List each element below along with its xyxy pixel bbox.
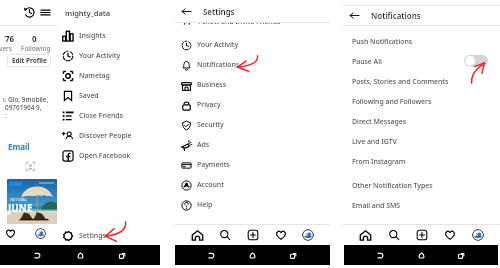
button[interactable]: Search — [388, 229, 400, 241]
button[interactable]: Security — [175, 115, 330, 135]
staticText: Discover People — [79, 131, 132, 141]
button[interactable]: Create — [247, 229, 259, 241]
button[interactable]: Activity — [275, 229, 287, 241]
staticText: 09761964 9, — [5, 103, 42, 112]
staticText: Account — [197, 180, 224, 190]
button[interactable]: Discover People — [57, 126, 160, 146]
staticText: Notifications — [197, 60, 240, 70]
button[interactable]: Create — [416, 229, 428, 241]
button[interactable]: Your Activity — [175, 35, 330, 55]
button[interactable]: Recents — [118, 251, 127, 260]
button[interactable]: Like — [5, 228, 16, 239]
staticText: Direct Messages — [352, 117, 491, 127]
staticText: Your Activity — [79, 51, 121, 61]
staticText: 76 — [5, 33, 15, 44]
button[interactable]: Business — [175, 75, 330, 95]
button[interactable]: Settings — [57, 226, 160, 245]
button[interactable]: Direct Messages — [343, 112, 500, 132]
staticText: Insights — [79, 31, 106, 41]
button[interactable]: Archive — [23, 6, 36, 19]
button[interactable]: From Instagram — [343, 152, 500, 172]
button[interactable]: Notifications — [175, 55, 330, 75]
button[interactable]: Follow and Invite Friends — [175, 22, 330, 35]
button[interactable]: Home — [359, 229, 372, 242]
staticText: mighty_data — [65, 8, 111, 18]
staticText: Following and Followers — [352, 97, 491, 107]
button[interactable]: Back — [349, 10, 360, 21]
staticText: Help — [197, 200, 213, 210]
button[interactable]: Home — [76, 251, 85, 260]
staticText: Settings — [79, 231, 106, 241]
button[interactable]: Payments — [175, 155, 330, 175]
button[interactable]: Edit Profile — [7, 54, 51, 67]
staticText: Open Facebook — [79, 151, 131, 161]
button[interactable]: Your Activity — [57, 46, 160, 66]
staticText: 0 — [32, 33, 37, 44]
button[interactable]: Recents — [289, 251, 298, 260]
staticText: Follow and Invite Friends — [198, 22, 281, 27]
staticText: Settings — [203, 6, 235, 17]
staticText: Pause All — [352, 57, 467, 67]
button[interactable]: Saved — [57, 86, 160, 106]
button[interactable]: Email and SMS — [343, 196, 500, 216]
staticText: Ads — [197, 140, 210, 150]
staticText: From Instagram — [352, 157, 491, 167]
staticText: Payments — [197, 160, 230, 170]
button[interactable]: Pause All toggle — [464, 55, 488, 67]
staticText: Your Activity — [197, 40, 239, 50]
button[interactable]: Back — [376, 251, 385, 260]
button[interactable]: Search — [219, 229, 231, 241]
staticText: Push Notifications — [352, 37, 491, 47]
staticText: JUNE — [8, 201, 33, 215]
button[interactable]: Help — [175, 195, 330, 215]
button[interactable]: Insights — [57, 26, 160, 46]
button[interactable]: Profile — [35, 228, 46, 239]
staticText: Security — [197, 120, 224, 130]
staticText: Saved — [79, 91, 99, 101]
button[interactable]: Profile — [472, 229, 484, 241]
button[interactable]: Profile — [302, 229, 314, 241]
button[interactable]: Pause All — [343, 52, 500, 72]
button[interactable]: Home — [248, 251, 257, 260]
staticText: Edit Profile — [12, 56, 47, 65]
button[interactable]: Live and IGTV — [343, 132, 500, 152]
staticText: : — [5, 111, 7, 120]
button[interactable]: Account — [175, 175, 330, 195]
button[interactable]: Privacy — [175, 95, 330, 115]
button[interactable]: Following and Followers — [343, 92, 500, 112]
staticText: Email — [8, 141, 30, 152]
button[interactable]: Other Notification Types — [343, 176, 500, 196]
button[interactable]: Home — [417, 251, 426, 260]
staticText: Nametag — [79, 71, 110, 81]
button[interactable]: Open Facebook — [57, 146, 160, 166]
staticText: Notifications — [371, 10, 421, 21]
staticText: Live and IGTV — [352, 137, 491, 147]
staticText: Posts, Stories and Comments — [352, 77, 491, 87]
staticText: Close Friends — [79, 111, 123, 121]
staticText: Business — [197, 80, 227, 90]
button[interactable]: Back — [33, 251, 42, 260]
staticText: Email and SMS — [352, 201, 491, 211]
button[interactable]: Menu — [40, 7, 51, 18]
button[interactable]: Posts, Stories and Comments — [343, 72, 500, 92]
button[interactable]: Back — [207, 251, 216, 260]
staticText: HOT DEAL — [10, 197, 27, 202]
button[interactable]: Home — [191, 229, 204, 242]
button[interactable]: Back — [181, 6, 192, 17]
button[interactable]: Push Notifications — [343, 32, 500, 52]
staticText: ı. Glo, 9mobile, — [3, 95, 49, 104]
staticText: Following — [21, 44, 51, 53]
button[interactable]: Recents — [457, 251, 466, 260]
button[interactable]: Ads — [175, 135, 330, 155]
button[interactable]: Nametag — [57, 66, 160, 86]
staticText: vers — [0, 44, 12, 53]
staticText: Other Notification Types — [352, 181, 491, 191]
staticText: Privacy — [197, 100, 221, 110]
button[interactable]: Activity — [444, 229, 456, 241]
button[interactable]: Close Friends — [57, 106, 160, 126]
